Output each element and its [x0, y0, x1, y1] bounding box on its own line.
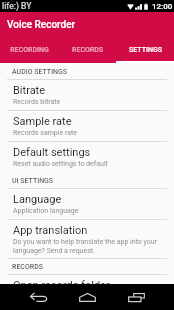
staticText: UI SETTINGS [12, 177, 54, 185]
button[interactable]: Sample rate [0, 111, 174, 142]
button[interactable]: Home [76, 286, 98, 308]
staticText: RECORDS [12, 263, 43, 271]
staticText: Sample rate [13, 115, 72, 128]
button[interactable]: SETTINGS [116, 37, 174, 63]
staticText: 12:00 [152, 2, 173, 11]
staticText: Open records folder [13, 279, 110, 292]
button[interactable]: Back [27, 286, 49, 308]
staticText: Do you want to help translate the app in… [13, 238, 166, 255]
button[interactable]: Language [0, 189, 174, 220]
button[interactable]: Recents [125, 286, 147, 308]
staticText: Reset audio settings to default [13, 160, 108, 168]
staticText: SETTINGS [129, 46, 162, 54]
staticText: Application language [13, 207, 79, 215]
staticText: Default settings [13, 146, 91, 159]
staticText: Voice Recorder [7, 19, 76, 31]
staticText: Language [13, 193, 62, 206]
button[interactable]: Default settings [0, 142, 174, 173]
staticText: Bitrate [13, 84, 46, 97]
button[interactable]: Bitrate [0, 80, 174, 111]
staticText: life:) BY [2, 1, 32, 11]
staticText: Records bitrate [13, 98, 61, 106]
button[interactable]: Open records folder [0, 275, 174, 305]
staticText: RECORDS [72, 46, 103, 54]
button[interactable]: RECORDS [58, 37, 116, 63]
staticText: App translation [13, 224, 88, 237]
staticText: Records sample rate [13, 129, 77, 137]
button[interactable]: App translation [0, 220, 174, 259]
button[interactable]: RECORDING [0, 37, 58, 63]
staticText: RECORDING [10, 46, 49, 54]
staticText: AUDIO SETTINGS [12, 68, 68, 76]
